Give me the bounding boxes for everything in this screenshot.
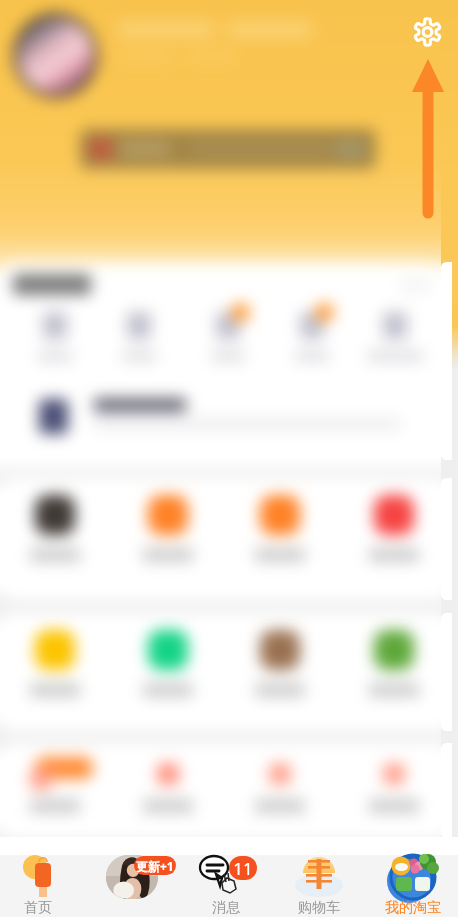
button[interactable]: Settings — [403, 8, 452, 56]
button[interactable] — [35, 757, 93, 779]
staticText: 首页 — [24, 899, 52, 917]
button[interactable] — [351, 495, 437, 562]
button[interactable] — [80, 129, 376, 169]
staticText: 我的淘宝 — [385, 899, 441, 917]
button[interactable]: 我的淘宝 — [367, 855, 458, 917]
button[interactable] — [362, 309, 428, 362]
button[interactable] — [22, 309, 88, 362]
staticText: 消息 — [212, 899, 240, 917]
button[interactable]: Live streams — [85, 855, 177, 917]
button[interactable] — [125, 630, 211, 697]
button[interactable] — [269, 763, 291, 785]
button[interactable] — [237, 630, 323, 697]
button[interactable] — [195, 309, 261, 362]
button[interactable] — [351, 630, 437, 697]
staticText: 更新+1 — [136, 858, 174, 874]
button[interactable] — [279, 309, 345, 362]
button[interactable] — [157, 763, 179, 785]
button[interactable]: 购物车 — [273, 855, 365, 917]
button[interactable] — [12, 495, 98, 562]
button[interactable]: Profile photo — [13, 13, 98, 98]
button[interactable]: 11 — [180, 855, 272, 917]
button[interactable] — [383, 763, 405, 785]
button[interactable] — [106, 309, 172, 362]
button[interactable]: 首页 — [0, 855, 84, 917]
staticText: 购物车 — [298, 899, 340, 917]
staticText: 11 — [229, 857, 257, 880]
button[interactable] — [237, 495, 323, 562]
button[interactable] — [125, 495, 211, 562]
button[interactable] — [12, 630, 98, 697]
